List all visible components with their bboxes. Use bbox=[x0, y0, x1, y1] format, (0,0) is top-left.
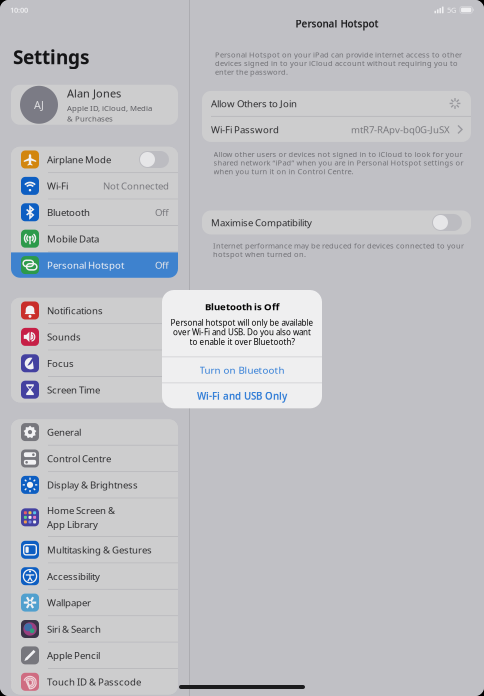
staticText: 5G bbox=[447, 5, 456, 15]
staticText: AJ bbox=[34, 97, 44, 112]
staticText: Wi-Fi and USB Only bbox=[197, 389, 287, 402]
staticText: mtR7-RApv-bq0G-JuSX bbox=[351, 123, 450, 136]
staticText: Mobile Data bbox=[47, 232, 99, 245]
staticText: to enable it over Bluetooth? bbox=[189, 336, 294, 347]
staticText: Touch ID & Passcode bbox=[47, 675, 141, 688]
button[interactable]: Wi-Fi and USB Only bbox=[162, 383, 322, 408]
staticText: Wallpaper bbox=[47, 596, 91, 609]
staticText: Settings bbox=[13, 44, 90, 70]
staticText: Apple ID, iCloud, Media bbox=[67, 103, 152, 113]
staticText: Alan Jones bbox=[67, 86, 121, 101]
button[interactable]: Notifications bbox=[11, 298, 178, 323]
staticText: over Wi-Fi and USB. Do you also want bbox=[173, 327, 311, 338]
staticText: Notifications bbox=[47, 304, 103, 317]
button[interactable]: Display & Brightness bbox=[11, 472, 178, 498]
staticText: Home Screen & bbox=[47, 504, 115, 517]
staticText: Airplane Mode bbox=[47, 153, 111, 166]
staticText: Control Centre bbox=[47, 452, 111, 465]
staticText: App Library bbox=[47, 518, 98, 531]
staticText: Internet performance may be reduced for … bbox=[213, 240, 464, 251]
button[interactable]: Siri & Search bbox=[11, 616, 178, 642]
button[interactable]: Mobile Data bbox=[11, 226, 178, 251]
button[interactable]: Touch ID & Passcode bbox=[11, 669, 178, 694]
button[interactable]: Bluetooth bbox=[11, 200, 178, 225]
button[interactable]: Control Centre bbox=[11, 446, 178, 471]
staticText: Bluetooth bbox=[47, 206, 90, 219]
staticText: Off bbox=[155, 259, 169, 272]
staticText: General bbox=[47, 426, 81, 439]
button[interactable]: Turn on Bluetooth bbox=[162, 357, 322, 382]
staticText: shared network “iPad” when you are in Pe… bbox=[213, 158, 463, 168]
staticText: Bluetooth is Off bbox=[205, 300, 279, 313]
button[interactable]: Airplane Mode bbox=[11, 147, 178, 172]
button[interactable]: Sounds bbox=[11, 324, 178, 350]
staticText: Allow Others to Join bbox=[211, 97, 297, 110]
staticText: Accessibility bbox=[47, 570, 100, 583]
staticText: Apple Pencil bbox=[47, 649, 100, 662]
button[interactable]: Screen Time bbox=[11, 377, 178, 402]
staticText: Personal Hotspot on your iPad can provid… bbox=[215, 49, 462, 60]
staticText: Off bbox=[155, 206, 169, 219]
button[interactable]: Personal Hotspot bbox=[11, 252, 178, 278]
button[interactable]: Wi-Fi bbox=[11, 173, 178, 199]
staticText: Turn on Bluetooth bbox=[199, 363, 284, 376]
staticText: Screen Time bbox=[47, 383, 100, 396]
button[interactable]: Wallpaper bbox=[11, 590, 178, 615]
button[interactable]: General bbox=[11, 419, 178, 445]
staticText: Siri & Search bbox=[47, 622, 101, 636]
staticText: enter the password. bbox=[215, 67, 288, 77]
staticText: Focus bbox=[47, 357, 74, 370]
staticText: Personal Hotspot bbox=[295, 17, 378, 30]
staticText: Sounds bbox=[47, 330, 81, 343]
button[interactable]: Allow Others to Join bbox=[202, 91, 471, 116]
button[interactable]: Focus bbox=[11, 351, 178, 376]
staticText: 10:00 bbox=[10, 5, 28, 15]
button[interactable]: Home Screen & bbox=[11, 499, 178, 536]
staticText: devices signed in to your iCloud account… bbox=[215, 58, 458, 68]
staticText: Multitasking & Gestures bbox=[47, 543, 152, 556]
staticText: Allow other users or devices not signed … bbox=[213, 149, 462, 159]
staticText: Display & Brightness bbox=[47, 478, 138, 491]
staticText: Wi-Fi bbox=[47, 179, 68, 192]
button[interactable]: Apple Pencil bbox=[11, 643, 178, 668]
staticText: Wi-Fi Password bbox=[211, 123, 279, 136]
staticText: & Purchases bbox=[67, 113, 113, 124]
staticText: hotspot when turned on. bbox=[213, 249, 306, 259]
button[interactable]: AJ bbox=[11, 85, 178, 125]
staticText: Personal Hotspot bbox=[47, 259, 124, 272]
button[interactable]: Wi-Fi Password bbox=[202, 117, 471, 142]
button[interactable]: Accessibility bbox=[11, 563, 178, 589]
button[interactable]: Maximise Compatibility bbox=[190, 210, 484, 234]
staticText: Not Connected bbox=[103, 179, 169, 192]
staticText: Maximise Compatibility bbox=[211, 216, 312, 229]
button[interactable]: Multitasking & Gestures bbox=[11, 537, 178, 562]
staticText: when you turn it on in Control Centre. bbox=[213, 166, 353, 176]
staticText: Personal hotspot will only be available bbox=[170, 317, 313, 328]
